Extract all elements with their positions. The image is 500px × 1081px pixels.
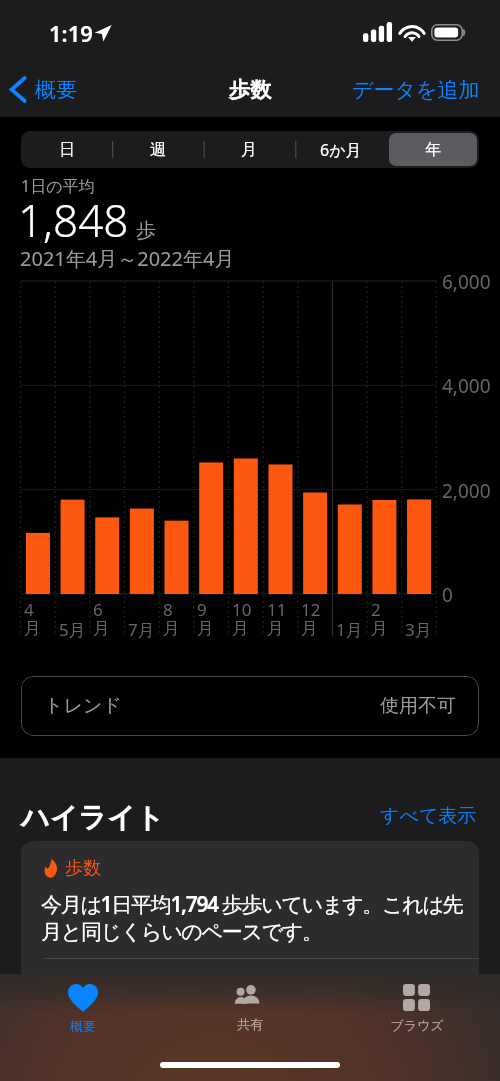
button[interactable]: 歩数 <box>21 841 479 1081</box>
button[interactable]: Sharing <box>166 974 333 1032</box>
staticText: 月 <box>241 140 257 160</box>
staticText: 2,000 <box>442 478 491 504</box>
staticText: 3月 <box>405 618 432 641</box>
staticText: 月 <box>232 618 249 639</box>
staticText: 歩数 <box>229 77 271 103</box>
staticText: 4 <box>24 598 34 621</box>
staticText: 概要 <box>35 77 77 103</box>
button[interactable]: 概要 <box>0 68 87 111</box>
staticText: 週 <box>150 140 166 160</box>
staticText: 月 <box>267 618 284 639</box>
staticText: 概要 <box>70 1018 96 1034</box>
staticText: 月 <box>93 618 110 639</box>
other: Summary <box>68 984 98 1012</box>
staticText: 11 <box>267 598 287 621</box>
staticText: 5月 <box>59 618 86 641</box>
staticText: 使用不可 <box>380 694 456 718</box>
button[interactable]: Summary <box>0 974 166 1034</box>
staticText: 6 <box>93 598 103 621</box>
staticText: ハイライト <box>21 800 165 835</box>
staticText: 年 <box>425 140 441 160</box>
button[interactable]: 年 <box>389 133 477 166</box>
staticText: 2021年4月～2022年4月 <box>20 245 235 272</box>
staticText: 日 <box>59 140 75 160</box>
button[interactable]: 月 <box>205 133 293 166</box>
button[interactable]: 6か月 <box>297 133 385 166</box>
staticText: 1日の平均 <box>21 175 95 197</box>
button[interactable]: トレンド <box>21 676 479 736</box>
staticText: 6,000 <box>442 269 491 295</box>
staticText: 0 <box>442 582 453 608</box>
staticText: 6か月 <box>320 139 362 161</box>
button[interactable]: 日 <box>23 133 110 166</box>
staticText: 月 <box>371 618 388 639</box>
staticText: 7月 <box>128 618 155 641</box>
staticText: 8 <box>163 598 173 621</box>
staticText: 10 <box>232 598 252 621</box>
staticText: トレンド <box>44 694 122 718</box>
staticText: 歩数 <box>65 857 101 880</box>
staticText: 共有 <box>237 1016 263 1032</box>
staticText: 今月は1日平均1,794 歩歩いています。これは先月と同じくらいのペースです。 <box>41 890 478 945</box>
button[interactable]: 週 <box>114 133 201 166</box>
staticText: 1月 <box>336 618 363 641</box>
staticText: 月 <box>163 618 180 639</box>
staticText: 月 <box>301 618 318 639</box>
other: Sharing <box>234 984 266 1010</box>
staticText: データを追加 <box>352 77 480 103</box>
staticText: すべて表示 <box>380 804 477 828</box>
other: Browse <box>403 984 430 1011</box>
staticText: 月 <box>24 618 41 639</box>
button[interactable]: すべて表示 <box>380 804 477 828</box>
button[interactable]: Browse <box>333 974 500 1033</box>
staticText: 1:19 <box>49 18 93 48</box>
staticText: 月 <box>197 618 214 639</box>
staticText: 2 <box>371 598 381 621</box>
staticText: 1,848 <box>18 190 129 250</box>
button[interactable]: データを追加 <box>332 69 500 111</box>
staticText: 9 <box>197 598 207 621</box>
staticText: ブラウズ <box>390 1017 444 1033</box>
staticText: 4,000 <box>442 373 491 399</box>
staticText: 12 <box>301 598 321 621</box>
staticText: 歩 <box>136 218 156 243</box>
